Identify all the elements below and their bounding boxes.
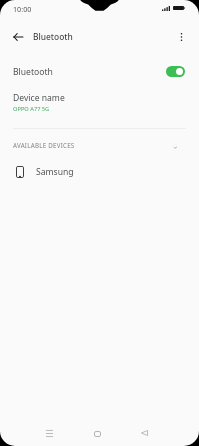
staticText: Samsung	[36, 166, 74, 178]
button[interactable]: Back	[131, 420, 157, 446]
button[interactable]: Samsung	[0, 159, 199, 185]
button[interactable]: Home	[84, 421, 110, 446]
staticText: Bluetooth	[33, 31, 73, 42]
button[interactable]: More options	[168, 24, 194, 50]
button[interactable]: Recent apps	[36, 420, 62, 446]
button[interactable]: Device name	[0, 89, 199, 119]
button[interactable]: Bluetooth	[0, 60, 199, 84]
staticText: Bluetooth	[13, 66, 53, 78]
staticText: 10:00	[13, 4, 32, 14]
staticText: OPPO A77 5G	[13, 105, 50, 113]
button[interactable]: Navigate up	[5, 24, 31, 50]
staticText: Device name	[13, 92, 65, 104]
staticText: AVAILABLE DEVICES	[13, 141, 75, 149]
